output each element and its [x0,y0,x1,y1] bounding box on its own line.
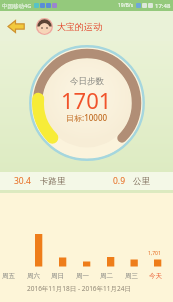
staticText: 公里 [133,176,150,187]
staticText: 30.4 [14,175,31,187]
staticText: 19/B/s [118,2,134,9]
button[interactable] [0,11,32,41]
button[interactable]: 30.4 [0,172,173,190]
button[interactable]: 大宝的运动 [57,21,102,32]
staticText: 卡路里 [40,176,66,187]
staticText: 周一 [76,272,89,280]
staticText: 今天 [149,272,162,280]
staticText: 1701 [61,85,112,115]
staticText: 中国移动4G [2,2,32,10]
staticText: 周二 [100,272,113,280]
staticText: 2016年11月18日 - 2016年11月24日 [27,284,131,293]
staticText: 17:48 [155,2,171,10]
staticText: 周三 [125,272,138,280]
button[interactable] [36,18,53,35]
staticText: 周六 [27,272,40,280]
staticText: 0.9 [113,175,126,187]
staticText: 目标:10000 [66,112,108,123]
staticText: 周五 [2,272,15,280]
button[interactable]: 1,701 [0,193,173,302]
staticText: 今日步数 [70,76,104,87]
staticText: 周日 [51,272,64,280]
staticText: 1,701 [148,250,161,257]
